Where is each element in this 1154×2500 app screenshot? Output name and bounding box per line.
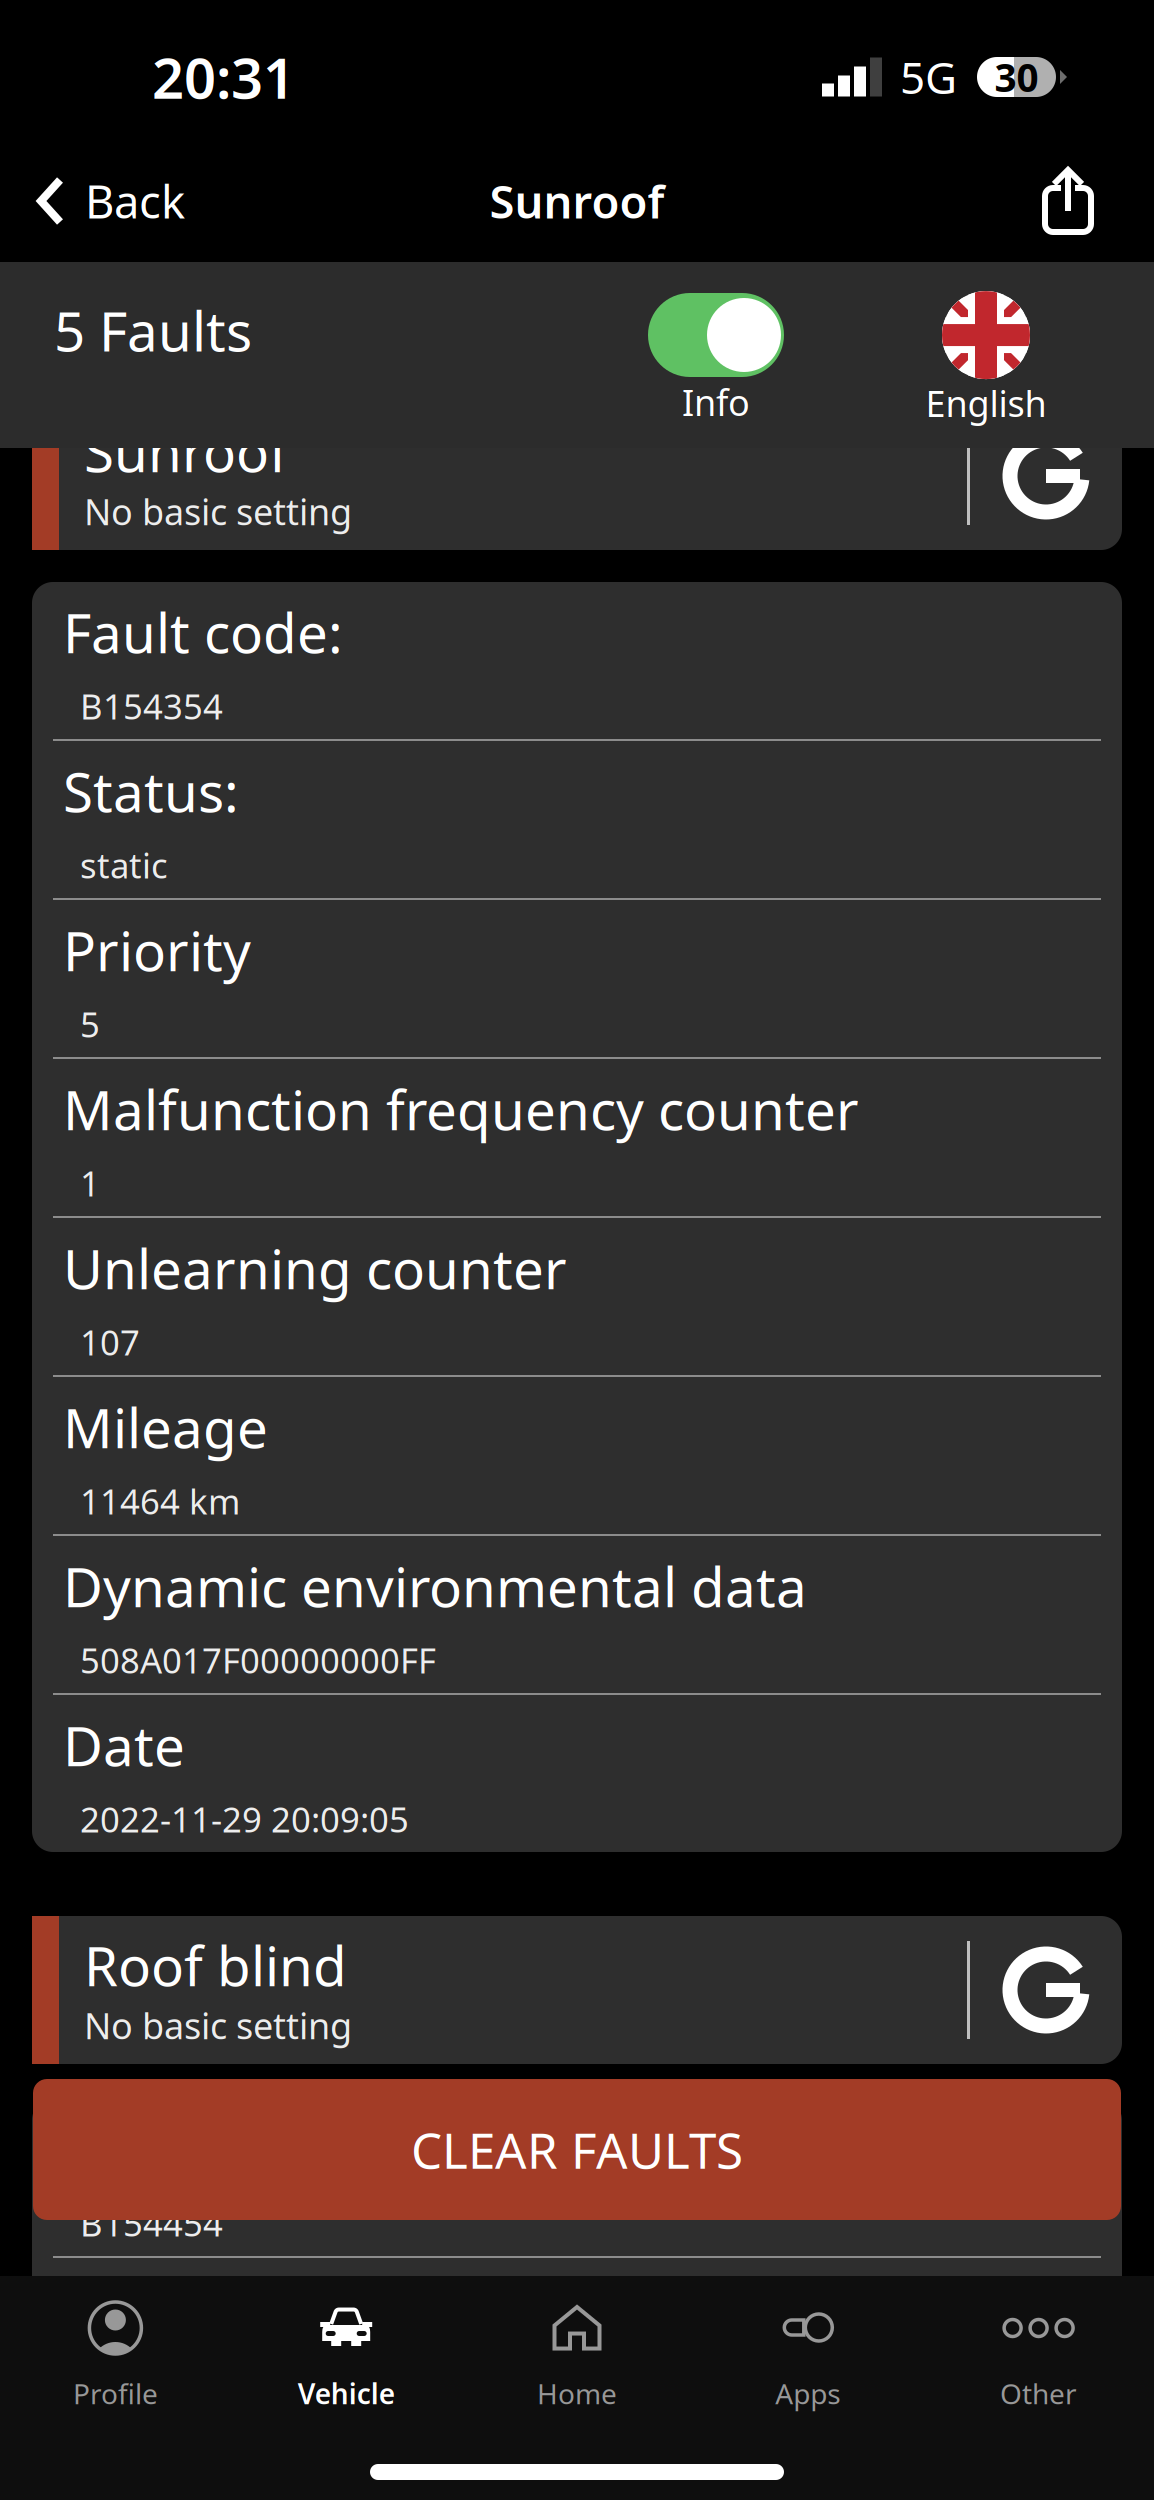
staticText: Vehicle — [298, 2375, 395, 2412]
button[interactable]: Profile — [0, 2276, 231, 2412]
staticText: Status: — [63, 2272, 239, 2344]
button[interactable]: Apps — [692, 2276, 923, 2412]
button[interactable]: Roof blind — [32, 1916, 1122, 2064]
staticText: 30 — [994, 51, 1038, 103]
staticText: Profile — [73, 2375, 158, 2412]
staticText: 2022-11-29 20:09:05 — [80, 1796, 409, 1842]
button[interactable]: Info — [616, 262, 816, 448]
staticText: Priority — [63, 914, 251, 986]
staticText: B154454 — [80, 2200, 223, 2246]
staticText: Roof blind — [84, 1929, 347, 2001]
button[interactable]: Sunroof — [32, 402, 1122, 550]
button[interactable]: Other — [923, 2276, 1154, 2412]
staticText: Malfunction frequency counter — [63, 1073, 859, 1145]
button[interactable]: Home — [462, 2276, 692, 2412]
staticText: Sunroof — [489, 171, 664, 231]
staticText: Mileage — [63, 1391, 268, 1463]
staticText: static — [80, 842, 168, 888]
staticText: Back — [85, 171, 185, 231]
staticText: Other — [1000, 2375, 1077, 2412]
button[interactable]: Back — [0, 157, 205, 245]
staticText: Home — [537, 2375, 617, 2412]
staticText: static — [80, 2359, 168, 2405]
staticText: 107 — [80, 1319, 140, 1365]
staticText: No basic setting — [84, 2001, 352, 2049]
staticText: 1 — [80, 1160, 100, 1206]
button[interactable]: CLEAR FAULTS — [33, 2079, 1121, 2220]
staticText: 5 — [80, 1001, 100, 1047]
button[interactable]: English — [886, 262, 1086, 448]
button[interactable]: Share — [1022, 157, 1154, 245]
staticText: No basic setting — [84, 487, 352, 535]
staticText: 5 Faults — [54, 294, 252, 367]
staticText: Fault code: — [63, 596, 343, 668]
staticText: B154354 — [80, 683, 223, 729]
staticText: Apps — [775, 2375, 840, 2412]
button[interactable]: Vehicle — [231, 2276, 462, 2412]
staticText: English — [925, 379, 1046, 427]
staticText: 20:31 — [152, 40, 295, 114]
staticText: 11464 km — [80, 1478, 240, 1524]
staticText: Date — [63, 1709, 185, 1781]
staticText: Sunroof — [84, 415, 288, 487]
staticText: 5G — [900, 48, 957, 106]
staticText: Info — [682, 378, 750, 426]
staticText: Dynamic environmental data — [63, 1550, 807, 1622]
staticText: 508A017F00000000FF — [80, 1637, 436, 1683]
staticText: Unlearning counter — [63, 1232, 567, 1304]
staticText: CLEAR FAULTS — [411, 2117, 743, 2182]
staticText: Status: — [63, 755, 239, 827]
